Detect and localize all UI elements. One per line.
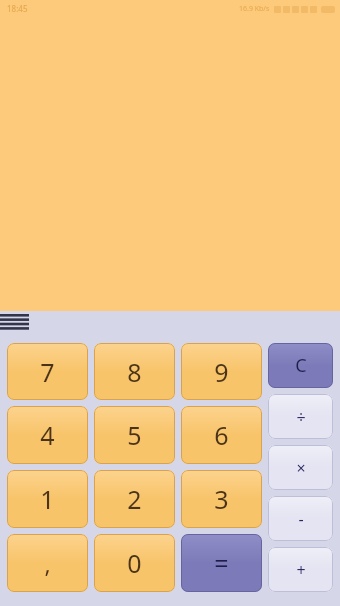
button[interactable]: 8 [94,343,175,400]
staticText: , [44,548,51,579]
staticText: C [295,353,307,378]
button[interactable]: 1 [7,470,88,528]
staticText: 16.9 Kb/s [239,4,270,14]
staticText: 0 [127,546,142,580]
button[interactable]: - [268,496,333,541]
staticText: 4 [40,418,55,452]
staticText: ÷ [296,406,306,428]
button[interactable]: 2 [94,470,175,528]
staticText: × [296,457,306,479]
staticText: 1 [40,482,55,516]
staticText: 7 [40,355,55,389]
staticText: + [296,559,306,581]
button[interactable]: Resize keypad [0,312,29,333]
staticText: 5 [127,418,142,452]
button[interactable]: = [181,534,262,592]
staticText: - [298,508,304,530]
button[interactable]: 5 [94,406,175,464]
staticText: = [214,546,229,580]
button[interactable]: 3 [181,470,262,528]
staticText: 3 [214,482,229,516]
button[interactable]: 0 [94,534,175,592]
button[interactable]: , [7,534,88,592]
staticText: 2 [127,482,142,516]
staticText: 8 [127,355,142,389]
button[interactable]: × [268,445,333,490]
button[interactable]: 9 [181,343,262,400]
staticText: 9 [214,355,229,389]
button[interactable]: C [268,343,333,388]
staticText: 6 [214,418,229,452]
button[interactable]: + [268,547,333,592]
button[interactable]: 6 [181,406,262,464]
staticText: 18:45 [7,3,28,14]
button[interactable]: 4 [7,406,88,464]
button[interactable]: ÷ [268,394,333,439]
button[interactable]: 7 [7,343,88,400]
